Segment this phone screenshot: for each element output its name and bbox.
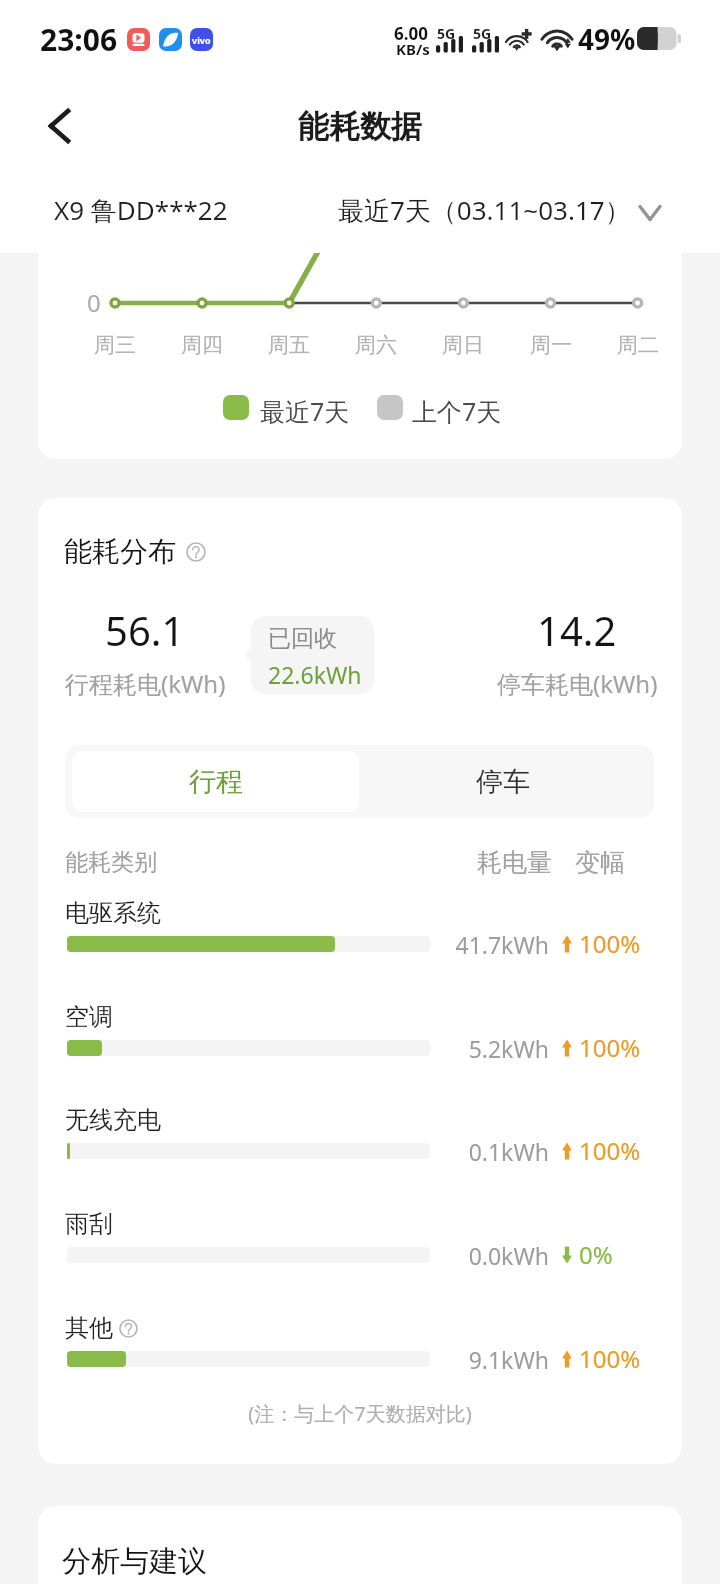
button[interactable]: 停车 xyxy=(359,751,647,812)
staticText: 已回收 xyxy=(268,624,337,653)
staticText: 周三 xyxy=(75,332,155,358)
staticText: 电驱系统 xyxy=(65,898,161,928)
staticText: 行程 xyxy=(189,765,243,799)
staticText: 0.1kWh xyxy=(420,1136,549,1167)
staticText: 5G xyxy=(473,24,492,43)
staticText: 周五 xyxy=(249,332,329,358)
staticText: 6.00 xyxy=(394,22,428,45)
staticText: 能耗分布 xyxy=(64,534,176,569)
staticText: 其他 xyxy=(65,1313,113,1343)
staticText: 能耗数据 xyxy=(298,107,422,146)
staticText: 最近7天 xyxy=(260,394,350,428)
staticText: 9.1kWh xyxy=(420,1344,549,1375)
staticText: 23:06 xyxy=(40,19,118,60)
staticText: 无线充电 xyxy=(65,1105,161,1135)
staticText: 停车 xyxy=(476,765,530,799)
staticText: 56.1 xyxy=(105,603,185,657)
staticText: 行程耗电(kWh) xyxy=(65,667,226,700)
staticText: (注：与上个7天数据对比) xyxy=(38,1400,682,1427)
staticText: 周六 xyxy=(336,332,416,358)
staticText: 上个7天 xyxy=(412,394,502,428)
staticText: 14.2 xyxy=(537,603,617,657)
staticText: 分析与建议 xyxy=(62,1543,207,1580)
staticText: X9 鲁DD***22 xyxy=(54,192,228,228)
staticText: 41.7kWh xyxy=(420,929,549,960)
staticText: 周二 xyxy=(598,332,678,358)
staticText: 周一 xyxy=(511,332,591,358)
staticText: KB/s xyxy=(396,39,430,59)
staticText: 空调 xyxy=(65,1002,113,1032)
staticText: 变幅 xyxy=(575,847,625,878)
staticText: 100% xyxy=(579,1134,641,1167)
staticText: 100% xyxy=(579,1031,641,1064)
staticText: 周日 xyxy=(423,332,503,358)
staticText: 49% xyxy=(578,20,636,58)
button[interactable]: 最近7天（03.11~03.17） xyxy=(338,186,662,222)
staticText: 22.6kWh xyxy=(268,659,362,690)
staticText: 周四 xyxy=(162,332,242,358)
button[interactable]: Back xyxy=(31,98,87,154)
staticText: 停车耗电(kWh) xyxy=(497,667,658,700)
staticText: 0 xyxy=(87,286,101,319)
staticText: 5.2kWh xyxy=(420,1033,549,1064)
staticText: 5G xyxy=(437,24,456,43)
staticText: 100% xyxy=(579,1342,641,1375)
button[interactable]: 行程 xyxy=(72,751,359,812)
staticText: 100% xyxy=(579,927,641,960)
staticText: 0.0kWh xyxy=(420,1240,549,1271)
staticText: 最近7天（03.11~03.17） xyxy=(338,192,631,228)
staticText: vivo xyxy=(192,34,211,46)
staticText: 能耗类别 xyxy=(65,848,157,877)
staticText: 雨刮 xyxy=(65,1209,113,1239)
staticText: 0% xyxy=(579,1238,613,1271)
staticText: 耗电量 xyxy=(477,847,552,878)
